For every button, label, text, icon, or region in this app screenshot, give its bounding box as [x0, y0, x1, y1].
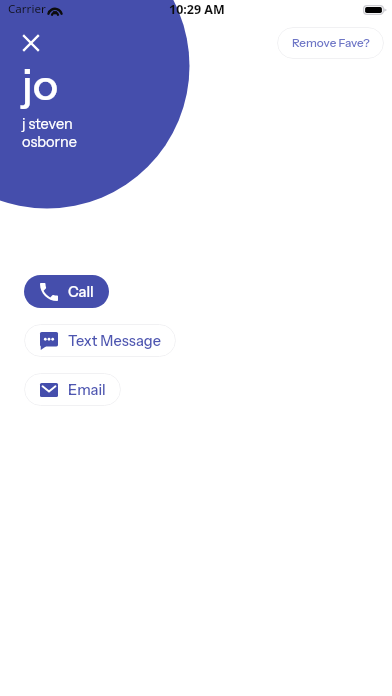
button[interactable]: Call: [24, 275, 109, 308]
staticText: 10:29 AM: [169, 1, 225, 18]
staticText: Remove Fave?: [292, 36, 370, 50]
staticText: jo: [22, 58, 59, 110]
staticText: Text Message: [68, 332, 161, 350]
button[interactable]: Close: [16, 28, 45, 57]
staticText: Call: [68, 283, 94, 301]
button[interactable]: Email: [24, 373, 121, 406]
staticText: Email: [68, 381, 106, 399]
staticText: Carrier: [8, 1, 46, 17]
staticText: j steven osborne: [22, 115, 77, 151]
button[interactable]: Remove Fave?: [277, 27, 384, 59]
button[interactable]: Text Message: [24, 324, 176, 357]
